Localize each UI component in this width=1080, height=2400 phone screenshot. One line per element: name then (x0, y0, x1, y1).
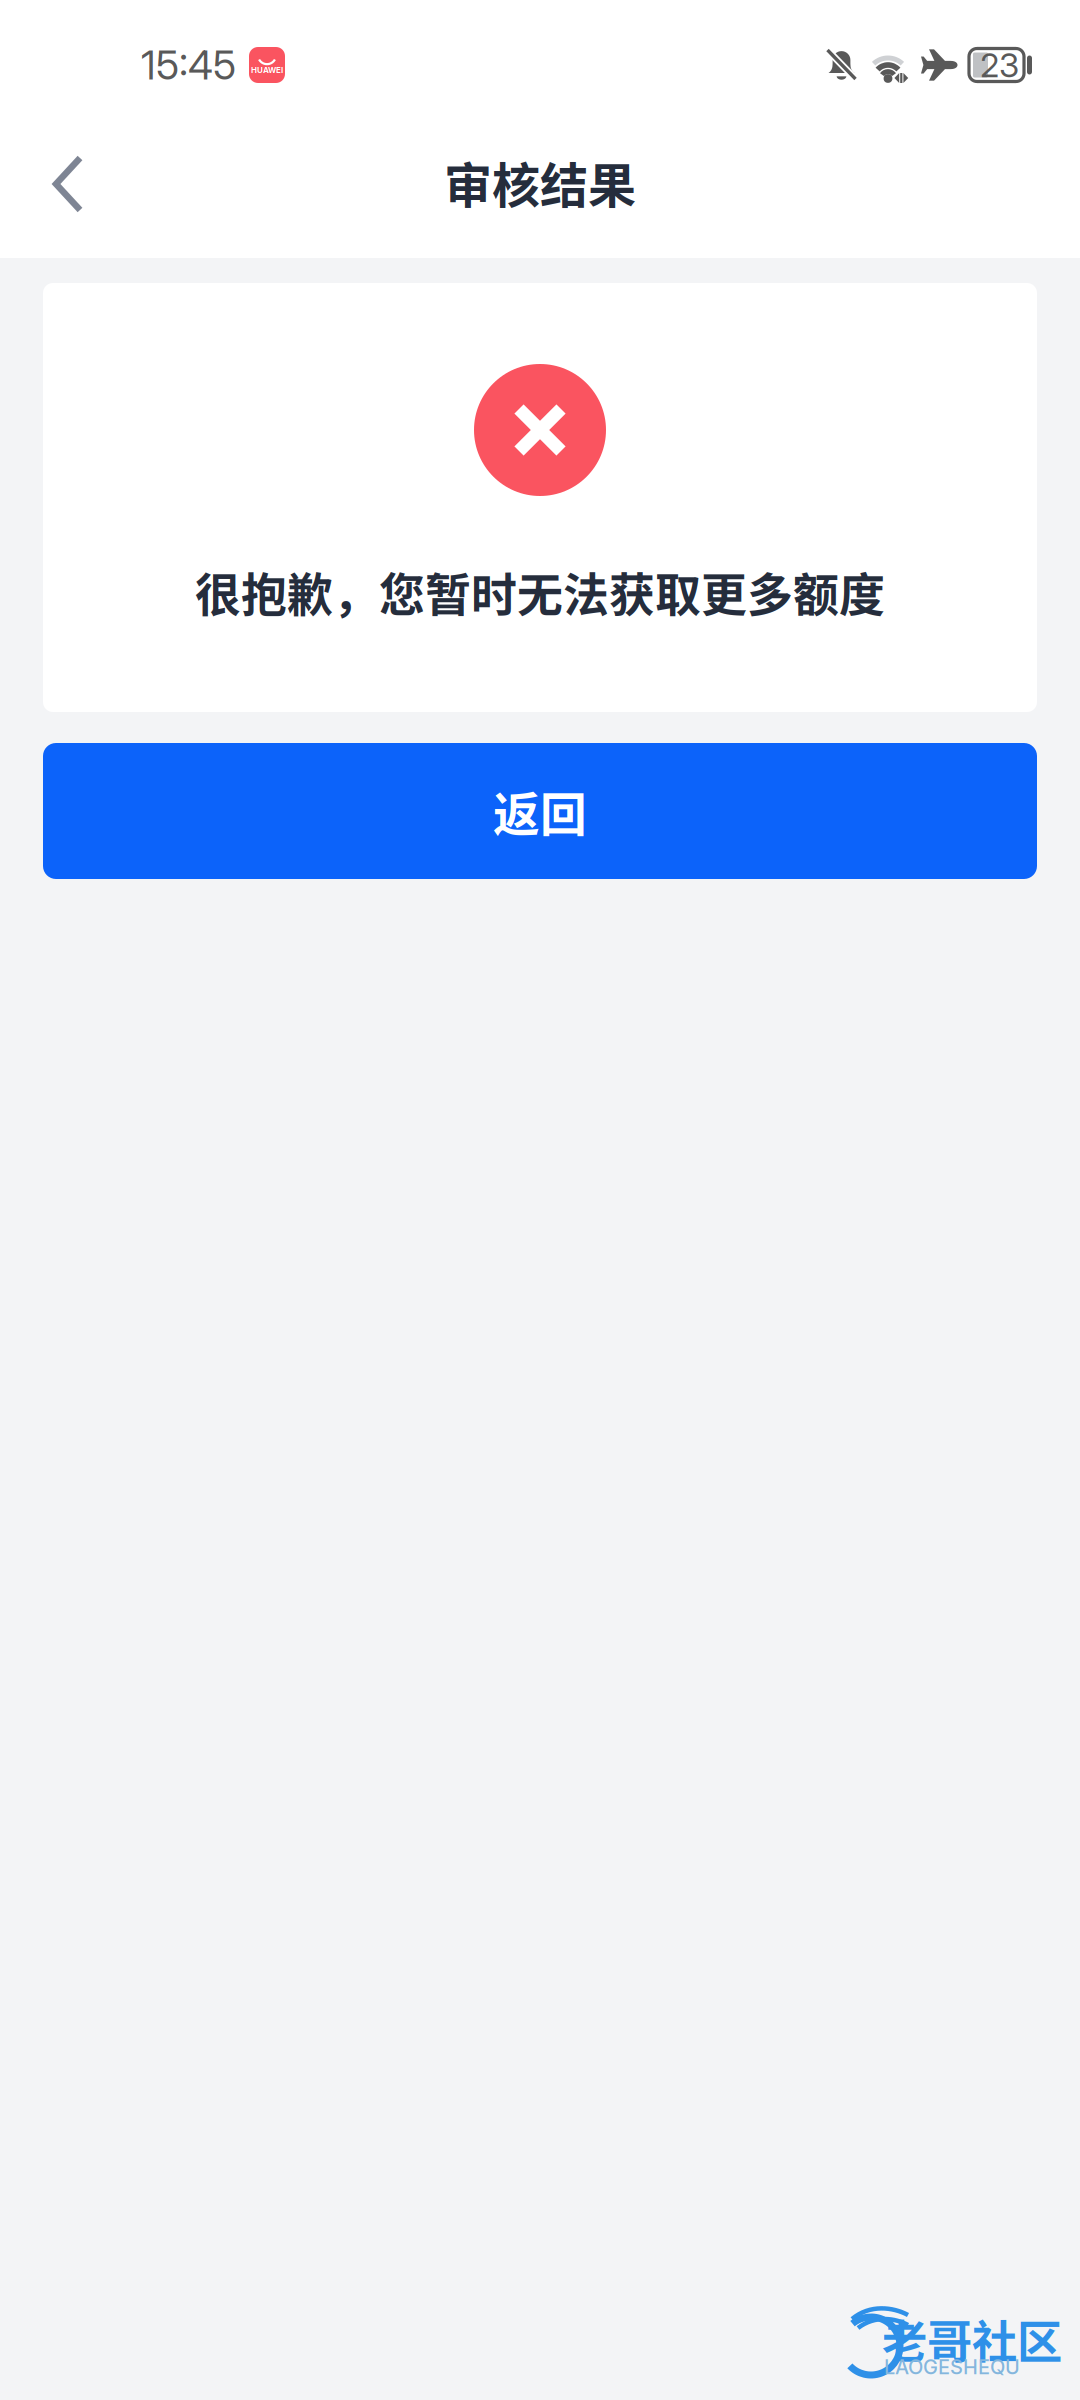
button[interactable]: 返回 (43, 743, 1037, 879)
staticText: 23 (980, 45, 1019, 85)
staticText: 返回 (493, 777, 587, 845)
staticText: HUAWEI (251, 65, 283, 75)
staticText: LAOGESHEQU (884, 2355, 1020, 2379)
button[interactable]: Back (0, 134, 118, 254)
staticText: 老哥社区 (882, 2306, 1062, 2372)
staticText: 审核结果 (444, 147, 636, 217)
staticText: 很抱歉，您暂时无法获取更多额度 (195, 558, 885, 624)
staticText: 15:45 (141, 41, 236, 89)
